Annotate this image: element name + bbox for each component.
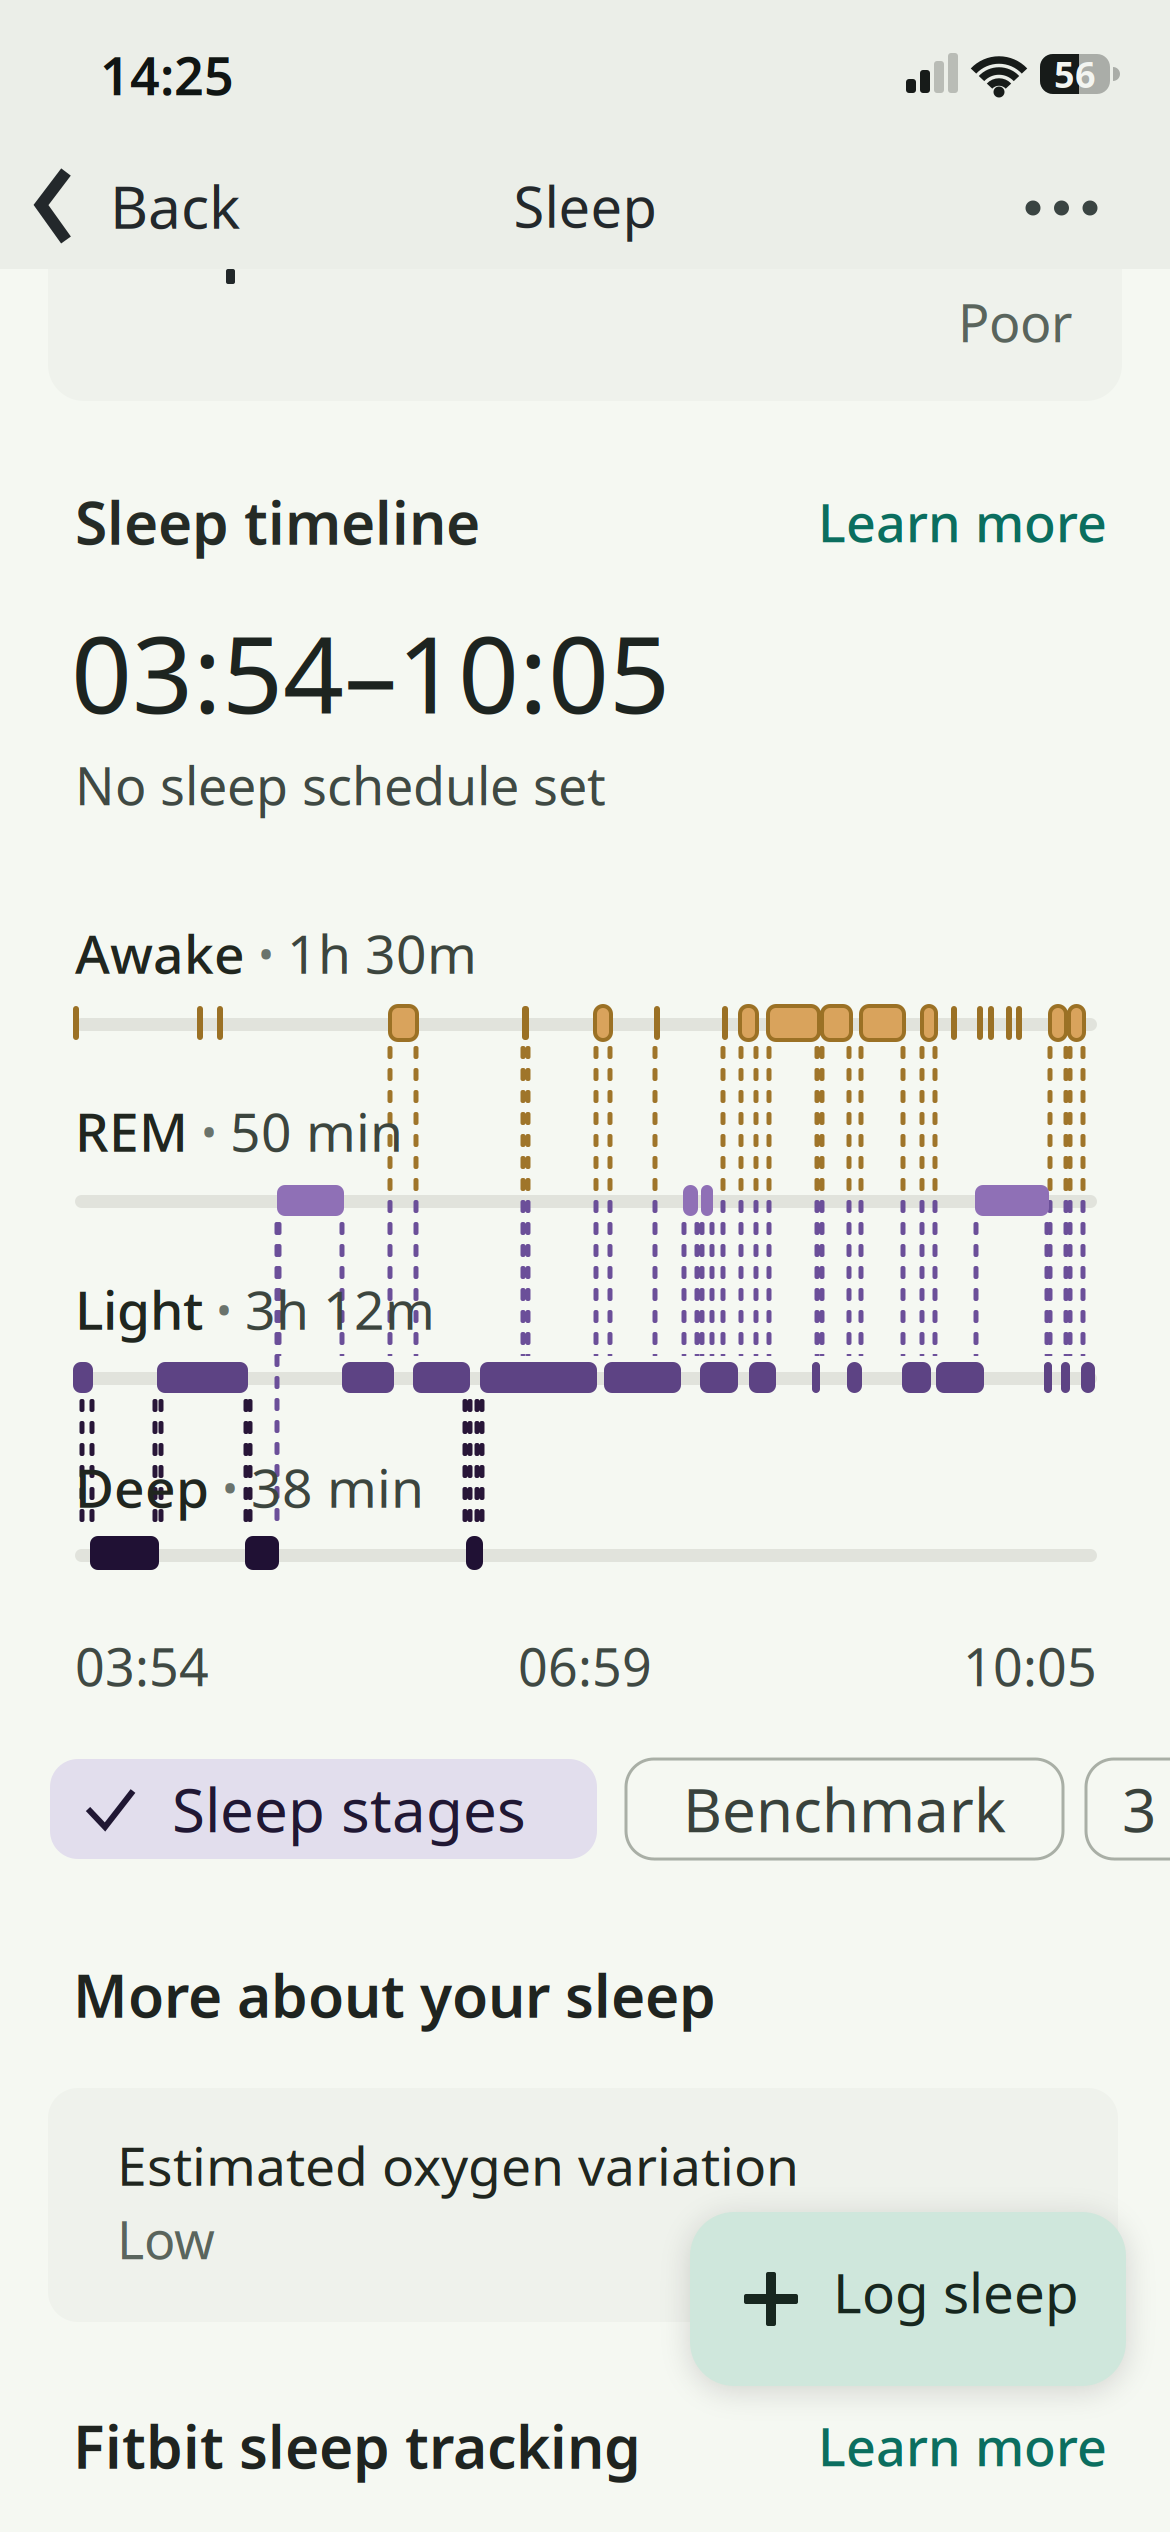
button[interactable]: Sleep stages: [0, 0, 597, 1859]
button[interactable]: Log sleep: [0, 0, 1170, 2532]
staticText: Low: [117, 2204, 215, 2274]
staticText: Back: [110, 167, 240, 245]
staticText: 06:59: [518, 1631, 652, 1701]
button[interactable]: Estimated oxygen variation: [0, 0, 1170, 2532]
staticText: 38 min: [251, 1452, 424, 1522]
staticText: Fitbit sleep tracking: [73, 2407, 641, 2485]
staticText: •: [222, 1459, 238, 1515]
staticText: Poor: [958, 287, 1072, 357]
staticText: Sleep stages: [172, 1769, 526, 1849]
staticText: Sleep: [513, 169, 656, 243]
staticText: Learn more: [818, 2411, 1107, 2481]
button[interactable]: Benchmark: [0, 0, 1170, 2532]
staticText: 50 min: [230, 1096, 403, 1166]
staticText: 14:25: [100, 40, 234, 110]
staticText: Benchmark: [683, 1769, 1006, 1849]
staticText: •: [216, 1281, 232, 1337]
staticText: More about your sleep: [73, 1956, 716, 2034]
button[interactable]: Learn more: [0, 0, 400, 70]
staticText: Estimated oxygen variation: [117, 2130, 799, 2200]
button[interactable]: Learn more: [0, 0, 400, 70]
staticText: REM: [75, 1096, 188, 1166]
staticText: Sleep timeline: [75, 483, 480, 561]
staticText: Deep: [75, 1452, 209, 1522]
staticText: Awake: [75, 918, 245, 988]
staticText: 03:54–10:05: [71, 601, 670, 743]
button[interactable]: 3: [0, 0, 1170, 2532]
staticText: 56: [1054, 50, 1096, 98]
button[interactable]: [0, 0, 1170, 269]
staticText: 03:54: [75, 1631, 209, 1701]
staticText: •: [258, 925, 274, 981]
staticText: 1h 30m: [287, 918, 477, 988]
staticText: Light: [75, 1274, 203, 1344]
staticText: 3h 12m: [245, 1274, 435, 1344]
staticText: 10:05: [963, 1631, 1097, 1701]
staticText: Log sleep: [833, 2256, 1079, 2328]
staticText: •: [201, 1103, 217, 1159]
staticText: Learn more: [818, 487, 1107, 557]
button[interactable]: Back: [0, 0, 380, 269]
staticText: No sleep schedule set: [75, 750, 606, 820]
staticText: 3: [1122, 1769, 1156, 1849]
